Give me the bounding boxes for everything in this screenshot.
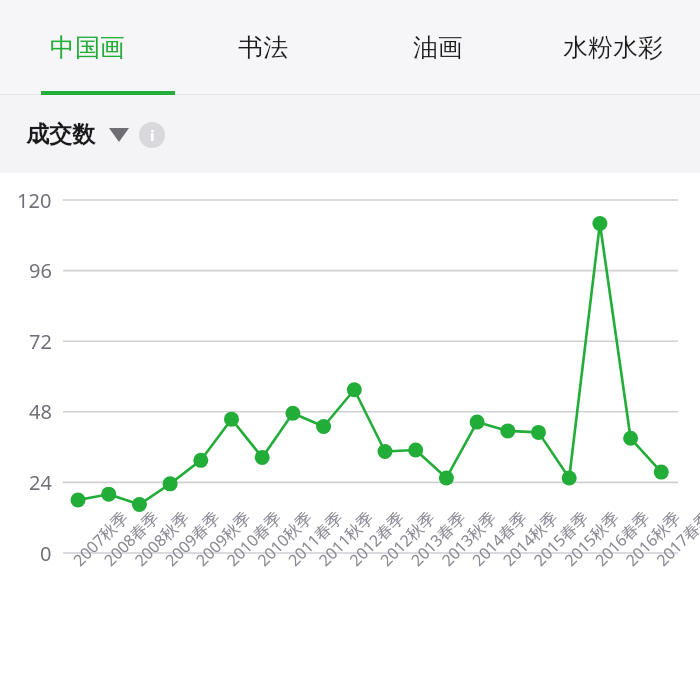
button[interactable]: 油画 <box>350 0 525 95</box>
staticText: 成交数 <box>26 120 95 149</box>
staticText: 油画 <box>413 32 463 63</box>
button[interactable]: 书法 <box>175 0 350 95</box>
staticText: i <box>150 125 155 145</box>
button[interactable]: 成交数 <box>26 120 165 149</box>
staticText: 书法 <box>238 32 288 63</box>
staticText: 中国画 <box>50 32 125 63</box>
button[interactable]: 说明 <box>139 122 165 148</box>
staticText: 水粉水彩 <box>563 32 663 63</box>
button[interactable]: 中国画 <box>0 0 175 95</box>
button[interactable]: 水粉水彩 <box>525 0 700 95</box>
